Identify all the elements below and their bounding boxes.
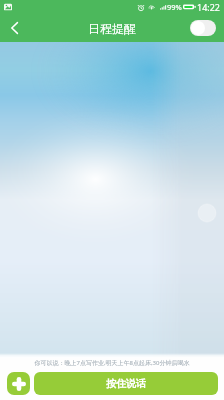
staticText: 14:22	[197, 1, 221, 13]
button[interactable]: 按住说话	[34, 372, 218, 395]
staticText: 按住说话	[106, 377, 146, 390]
button[interactable]: Add reminder	[7, 372, 30, 395]
staticText: 99%	[167, 2, 182, 12]
staticText: 你可以说：晚上7点写作业,明天上午8点起床,30分钟后喝水	[6, 359, 218, 367]
button[interactable]: Back	[0, 14, 28, 42]
button[interactable]: Toggle schedule reminder	[190, 20, 216, 36]
staticText: 日程提醒	[88, 21, 136, 36]
